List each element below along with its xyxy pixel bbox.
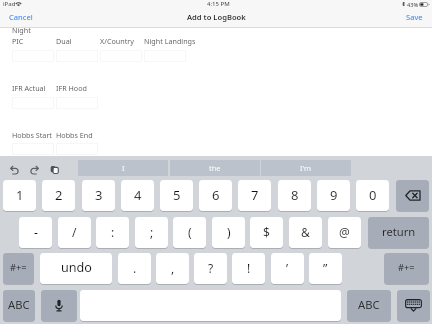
staticText: ;	[150, 224, 154, 240]
staticText: &	[301, 224, 310, 240]
staticText: undo	[61, 259, 92, 276]
staticText: Add to LogBook	[187, 12, 246, 22]
staticText: 4	[134, 186, 142, 204]
button[interactable]: !	[232, 253, 265, 285]
staticText: I'm	[300, 163, 312, 173]
staticText: 0	[369, 186, 377, 204]
button[interactable]: the	[170, 160, 260, 176]
button[interactable]: ABC	[347, 290, 391, 322]
staticText: ABC	[358, 297, 380, 312]
staticText: 9	[330, 186, 338, 204]
button[interactable]: 9	[317, 180, 350, 212]
button[interactable]: Save	[406, 12, 423, 22]
staticText: PIC	[12, 36, 24, 46]
staticText: X/Country	[100, 36, 134, 46]
button[interactable]: (	[173, 217, 206, 249]
staticText: ?	[208, 260, 214, 276]
staticText: 7	[251, 186, 259, 204]
staticText: IFR Actual	[12, 83, 46, 93]
button[interactable]: -	[19, 217, 52, 249]
button[interactable]: ”	[309, 253, 342, 285]
button[interactable]: #+=	[3, 253, 34, 285]
button[interactable]: @	[328, 217, 361, 249]
staticText: /	[72, 224, 77, 240]
staticText: 3	[95, 186, 103, 204]
button[interactable]: 2	[42, 180, 75, 212]
button[interactable]: /	[58, 217, 91, 249]
staticText: 8	[291, 186, 299, 204]
staticText: return	[382, 224, 416, 239]
button[interactable]: undo	[40, 253, 112, 285]
button[interactable]: 3	[82, 180, 115, 212]
button[interactable]: Hide keyboard	[397, 290, 430, 322]
button[interactable]: 1	[3, 180, 36, 212]
staticText: )	[227, 224, 231, 240]
staticText: iPad	[3, 0, 16, 8]
button[interactable]	[56, 97, 98, 109]
button[interactable]: I'm	[261, 160, 351, 176]
button[interactable]: Dictate	[41, 290, 77, 322]
button[interactable]	[144, 50, 186, 62]
staticText: -	[34, 224, 38, 240]
staticText: Hobbs End	[56, 130, 93, 140]
button[interactable]: .	[118, 253, 151, 285]
button[interactable]: ,	[156, 253, 189, 285]
staticText: ’	[286, 260, 289, 276]
staticText: .	[133, 260, 137, 276]
button[interactable]	[100, 50, 142, 62]
button[interactable]: I	[78, 160, 168, 176]
button[interactable]	[12, 143, 54, 155]
staticText: ,	[171, 260, 175, 276]
button[interactable]: 5	[160, 180, 193, 212]
staticText: I	[122, 163, 125, 173]
staticText: @	[339, 224, 350, 240]
staticText: Night	[12, 25, 31, 35]
button[interactable]: ’	[271, 253, 304, 285]
button[interactable]: )	[212, 217, 245, 249]
staticText: 1	[16, 186, 24, 204]
button[interactable]: Cancel	[9, 12, 33, 22]
staticText: 2	[55, 186, 63, 204]
staticText: #+=	[398, 261, 415, 274]
staticText: IFR Hood	[56, 83, 87, 93]
staticText: Dual	[56, 36, 72, 46]
button[interactable]	[12, 50, 54, 62]
button[interactable]: &	[289, 217, 322, 249]
staticText: ABC	[8, 297, 30, 312]
button[interactable]	[12, 97, 54, 109]
staticText: 6	[212, 186, 220, 204]
button[interactable]: $	[250, 217, 283, 249]
button[interactable]: 7	[238, 180, 271, 212]
staticText: the	[209, 163, 221, 173]
staticText: $	[263, 224, 270, 240]
button[interactable]: 0	[356, 180, 389, 212]
staticText: (	[188, 224, 192, 240]
staticText: 4:15 PM	[207, 0, 230, 8]
staticText: Hobbs Start	[12, 130, 52, 140]
staticText: Night Landings	[144, 36, 196, 46]
staticText: ”	[323, 260, 328, 276]
button[interactable]: Backspace	[396, 180, 429, 212]
button[interactable]	[56, 50, 98, 62]
button[interactable]: ;	[135, 217, 168, 249]
button[interactable]: return	[368, 217, 429, 249]
button[interactable]	[56, 143, 98, 155]
button[interactable]: ABC	[3, 290, 35, 322]
button[interactable]: Undo	[10, 166, 19, 174]
button[interactable]: 6	[199, 180, 232, 212]
button[interactable]: Space	[80, 290, 341, 322]
staticText: :	[111, 224, 115, 240]
button[interactable]: 4	[121, 180, 154, 212]
button[interactable]: #+=	[384, 253, 429, 285]
button[interactable]: 8	[278, 180, 311, 212]
staticText: #+=	[10, 261, 27, 274]
staticText: 43%	[407, 1, 419, 9]
button[interactable]: Paste	[50, 165, 59, 174]
button[interactable]: ?	[194, 253, 227, 285]
staticText: !	[247, 260, 251, 276]
button[interactable]: :	[96, 217, 129, 249]
button[interactable]: Redo	[30, 166, 39, 174]
staticText: 5	[173, 186, 181, 204]
